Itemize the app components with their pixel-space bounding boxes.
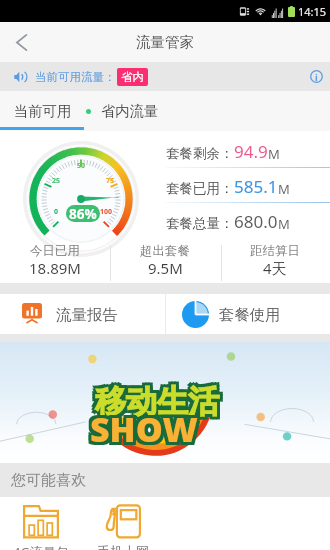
staticText: SHOW	[87, 406, 195, 452]
staticText: 今日已用	[30, 243, 80, 259]
staticText: 手机上网	[97, 543, 149, 550]
staticText: 移动生活	[98, 385, 222, 424]
button[interactable]: 移动生活SHOW 活动	[0, 342, 330, 463]
button[interactable]: Information	[302, 62, 330, 91]
button[interactable]: 流量报告	[0, 294, 165, 334]
staticText: M	[278, 180, 290, 198]
staticText: 94.9	[234, 140, 268, 163]
staticText: 省内	[121, 70, 144, 84]
staticText: 移动生活	[92, 382, 216, 421]
staticText: 移动生活	[98, 382, 222, 421]
staticText: 省内流量	[101, 102, 159, 120]
staticText: 75	[106, 176, 115, 186]
staticText: 您可能喜欢	[11, 471, 86, 490]
button[interactable]: 省内流量	[101, 102, 159, 120]
staticText: 移动生活	[92, 379, 216, 418]
staticText: 当前可用	[14, 102, 72, 120]
staticText: 套餐已用：	[166, 180, 234, 197]
staticText: 100	[100, 207, 113, 217]
staticText: SHOW	[90, 406, 198, 452]
button[interactable]: 手机上网	[82, 497, 164, 550]
button[interactable]: 超出套餐	[110, 242, 220, 283]
staticText: 移动生活	[98, 379, 222, 418]
staticText: SHOW	[90, 409, 198, 455]
staticText: 0	[54, 207, 59, 217]
staticText: 流量管家	[136, 33, 194, 51]
staticText: 移动生活	[95, 382, 219, 421]
staticText: 50	[77, 161, 86, 171]
staticText: 移动生活	[95, 379, 219, 418]
staticText: 流量报告	[56, 305, 118, 324]
staticText: 86%	[69, 205, 97, 222]
button[interactable]: 当前可用	[14, 102, 72, 120]
staticText: SHOW	[87, 409, 195, 455]
staticText: SHOW	[90, 403, 198, 449]
button[interactable]: Back	[0, 22, 42, 62]
staticText: 移动生活	[92, 385, 216, 424]
staticText: SHOW	[93, 406, 201, 452]
staticText: 9.5M	[148, 258, 183, 278]
button[interactable]: 4G流量包	[0, 497, 82, 550]
staticText: 18.89M	[29, 258, 81, 278]
staticText: SHOW	[87, 403, 195, 449]
staticText: 当前可用流量：	[35, 70, 116, 84]
button[interactable]: 距结算日	[220, 242, 330, 283]
staticText: 超出套餐	[140, 243, 190, 259]
staticText: 移动生活	[95, 385, 219, 424]
staticText: 距结算日	[250, 243, 300, 259]
staticText: 4天	[263, 258, 287, 278]
staticText: SHOW	[93, 403, 201, 449]
staticText: SHOW	[93, 409, 201, 455]
staticText: M	[278, 215, 290, 233]
staticText: 套餐使用	[219, 305, 281, 324]
staticText: 套餐剩余：	[166, 145, 234, 162]
staticText: i	[315, 71, 318, 83]
button[interactable]: 套餐使用	[165, 294, 330, 334]
staticText: 680.0	[234, 210, 278, 233]
staticText: 14:15	[298, 4, 327, 19]
button[interactable]: 今日已用	[0, 242, 110, 283]
staticText: 套餐总量：	[166, 215, 234, 232]
staticText: 585.1	[234, 175, 278, 198]
staticText: 4G流量包	[13, 543, 69, 550]
staticText: 25	[52, 176, 61, 186]
staticText: M	[268, 145, 280, 163]
